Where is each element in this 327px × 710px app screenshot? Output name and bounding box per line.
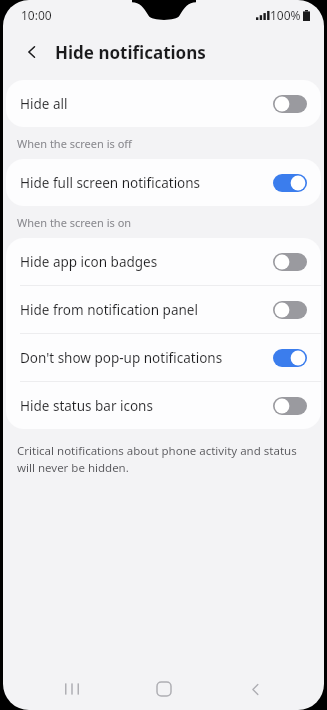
- button[interactable]: Back: [17, 37, 47, 67]
- staticText: Critical notifications about phone activ…: [17, 443, 310, 476]
- button[interactable]: Recent apps: [50, 668, 94, 710]
- button[interactable]: Hide status bar icons: [6, 382, 321, 429]
- staticText: Hide all: [20, 95, 68, 113]
- button[interactable]: Home: [142, 668, 186, 710]
- staticText: When the screen is off: [17, 136, 132, 151]
- button[interactable]: Hide all: [6, 80, 321, 127]
- staticText: Hide full screen notifications: [20, 174, 201, 192]
- button[interactable]: Hide from notification panel: [6, 286, 321, 333]
- staticText: Hide status bar icons: [20, 397, 153, 415]
- staticText: Hide notifications: [55, 41, 206, 64]
- staticText: 10:00: [21, 7, 52, 23]
- staticText: When the screen is on: [17, 215, 132, 230]
- staticText: 100%: [270, 7, 301, 23]
- staticText: Hide app icon badges: [20, 253, 158, 271]
- button[interactable]: Back: [233, 668, 277, 710]
- button[interactable]: Don't show pop-up notifications: [6, 334, 321, 381]
- button[interactable]: Hide app icon badges: [6, 238, 321, 285]
- staticText: Hide from notification panel: [20, 301, 198, 319]
- staticText: Don't show pop-up notifications: [20, 349, 223, 367]
- button[interactable]: Hide full screen notifications: [6, 159, 321, 206]
